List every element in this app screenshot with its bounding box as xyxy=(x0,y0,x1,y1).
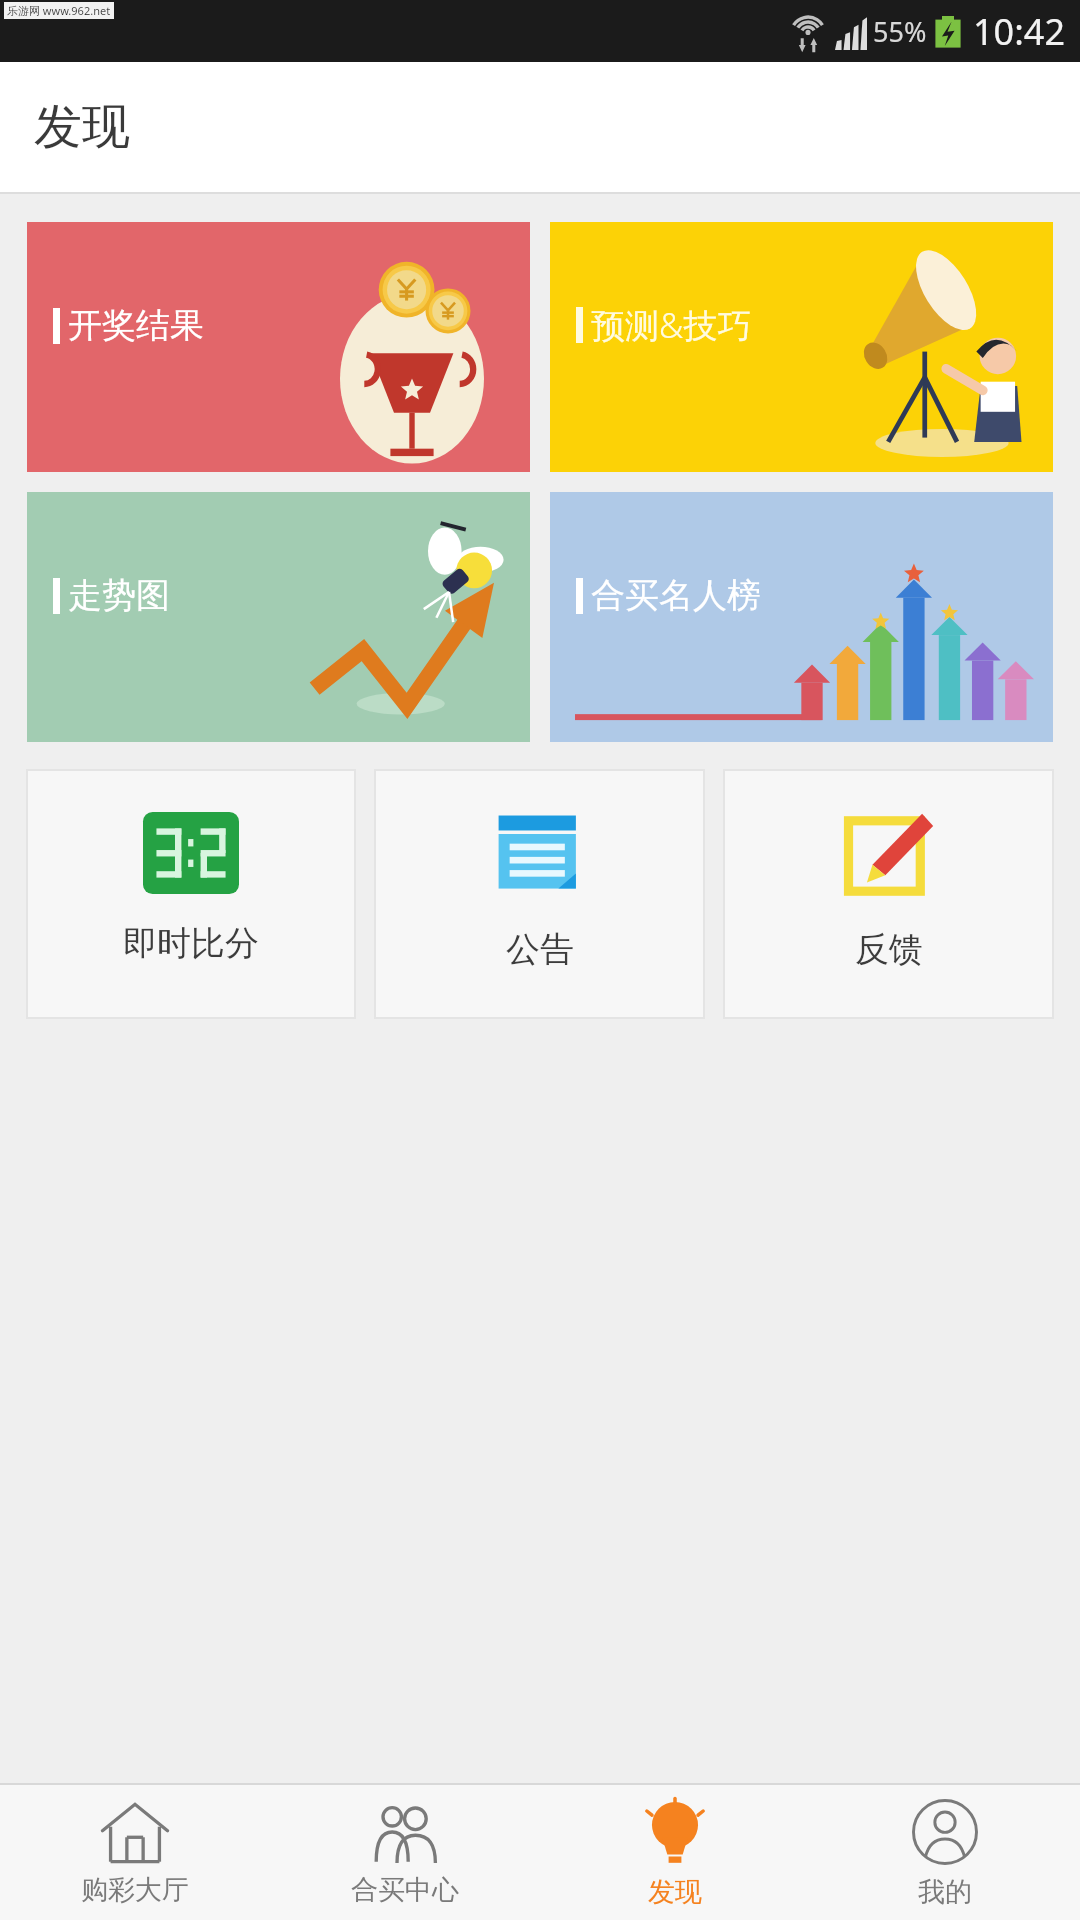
button[interactable]: 我的 xyxy=(810,1785,1080,1920)
button[interactable]: 反馈 xyxy=(724,770,1053,1018)
staticText: 发现 xyxy=(34,97,130,157)
staticText: 开奖结果 xyxy=(68,304,204,347)
staticText: 55% xyxy=(873,13,927,50)
button[interactable]: 购彩大厅 xyxy=(0,1785,270,1920)
button[interactable]: 即时比分 xyxy=(27,770,355,1018)
staticText: 乐游网 www.962.net xyxy=(7,3,111,18)
staticText: 发现 xyxy=(648,1875,702,1909)
button[interactable]: 合买中心 xyxy=(270,1785,540,1920)
staticText: 公告 xyxy=(506,928,574,971)
staticText: 走势图 xyxy=(68,574,170,617)
button[interactable]: 预测&技巧 xyxy=(550,222,1053,472)
button[interactable]: 开奖结果 xyxy=(27,222,530,472)
staticText: 反馈 xyxy=(855,928,923,971)
button[interactable]: 走势图 xyxy=(27,492,530,742)
staticText: 预测&技巧 xyxy=(591,302,752,348)
staticText: 合买中心 xyxy=(351,1873,459,1907)
staticText: 即时比分 xyxy=(123,922,259,965)
staticText: 合买名人榜 xyxy=(591,574,761,617)
staticText: 10:42 xyxy=(973,7,1066,56)
button[interactable]: 公告 xyxy=(375,770,704,1018)
staticText: 购彩大厅 xyxy=(81,1873,189,1907)
staticText: 我的 xyxy=(918,1875,972,1909)
button[interactable]: 发现 xyxy=(540,1785,810,1920)
button[interactable]: 合买名人榜 xyxy=(550,492,1053,742)
